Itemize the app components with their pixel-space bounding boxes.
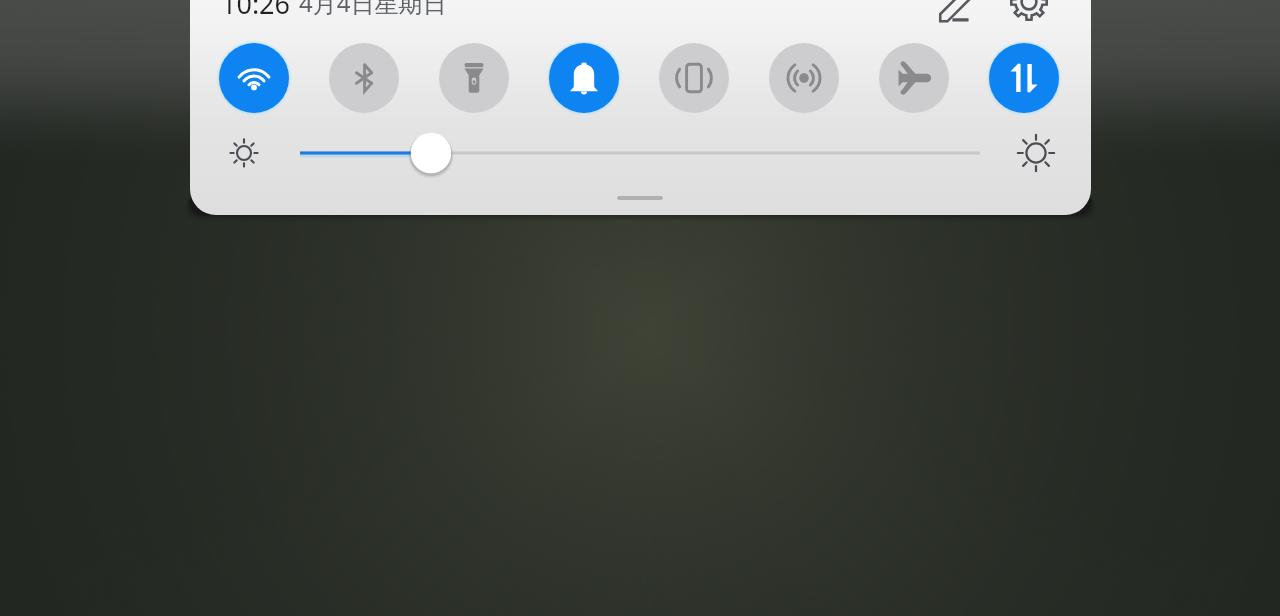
button[interactable]: Airplane mode bbox=[874, 38, 954, 118]
button[interactable]: Flashlight bbox=[434, 38, 514, 118]
staticText: 4月4日星期日 bbox=[299, 0, 447, 16]
button[interactable]: Hotspot bbox=[764, 38, 844, 118]
button[interactable]: Brightness bbox=[290, 130, 990, 176]
button[interactable]: Edit tiles bbox=[932, 0, 974, 29]
button[interactable]: Vibrate bbox=[654, 38, 734, 118]
button[interactable]: Wi-Fi bbox=[214, 38, 294, 118]
staticText: 10:26 bbox=[221, 0, 291, 15]
button[interactable]: Mobile data bbox=[984, 38, 1064, 118]
button[interactable]: Settings bbox=[1005, 0, 1053, 26]
button[interactable]: Bluetooth bbox=[324, 38, 404, 118]
button[interactable]: Sound bbox=[544, 38, 624, 118]
